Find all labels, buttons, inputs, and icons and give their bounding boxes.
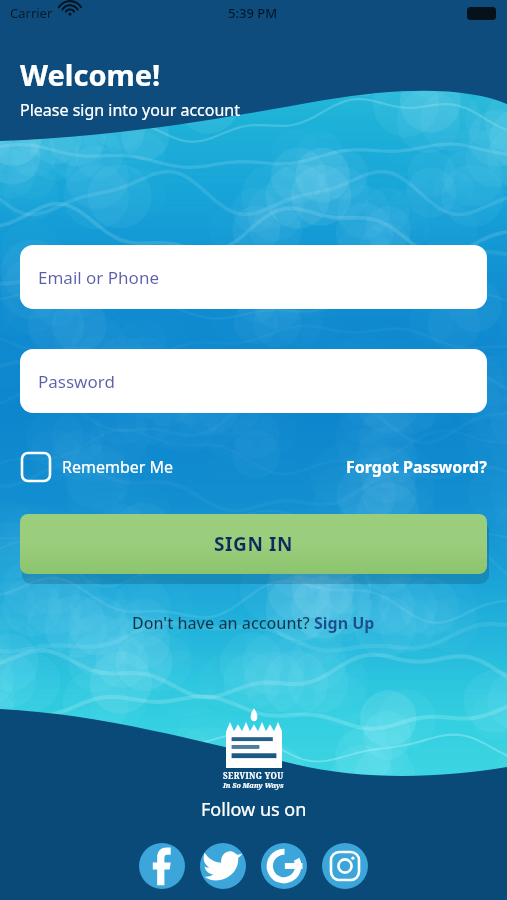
staticText: Sign Up bbox=[314, 612, 375, 634]
button[interactable]: Forgot Password? bbox=[346, 456, 487, 478]
staticText: Don't have an account? bbox=[132, 612, 314, 634]
staticText: Forgot Password? bbox=[346, 456, 487, 478]
button[interactable]: Instagram bbox=[322, 843, 368, 889]
staticText: Welcome! bbox=[20, 55, 161, 94]
staticText: SERVING YOU bbox=[223, 770, 284, 781]
staticText: Please sign into your account bbox=[20, 99, 241, 121]
button[interactable]: Remember Me bbox=[22, 453, 174, 481]
staticText: Email or Phone bbox=[38, 266, 159, 289]
staticText: Follow us on bbox=[201, 797, 307, 822]
staticText: Remember Me bbox=[62, 456, 174, 478]
button[interactable]: SIGN IN bbox=[20, 514, 487, 574]
button[interactable]: Password bbox=[20, 349, 487, 413]
staticText: SIGN IN bbox=[214, 531, 294, 557]
button[interactable]: Facebook bbox=[139, 843, 185, 889]
button[interactable]: Sign Up bbox=[314, 612, 375, 634]
staticText: Password bbox=[38, 370, 115, 393]
staticText: Carrier bbox=[10, 4, 53, 22]
button[interactable]: Email or Phone bbox=[20, 245, 487, 309]
button[interactable]: Google bbox=[261, 843, 307, 889]
staticText: In So Many Ways bbox=[223, 781, 284, 791]
staticText: 5:39 PM bbox=[228, 4, 278, 22]
button[interactable]: Twitter bbox=[200, 843, 246, 889]
